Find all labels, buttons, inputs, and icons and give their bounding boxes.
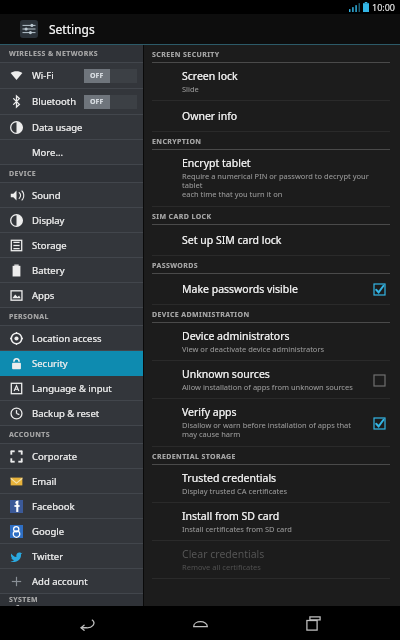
button[interactable]: Make passwords visible (370, 280, 388, 298)
button[interactable]: Google (0, 519, 143, 543)
staticText: Add account (32, 575, 88, 588)
button[interactable]: Verify apps (144, 399, 400, 446)
button[interactable]: Make passwords visible (144, 274, 400, 304)
button[interactable]: Toggle (84, 95, 137, 109)
staticText: SYSTEM (9, 595, 39, 605)
button[interactable]: Storage (0, 233, 143, 257)
button[interactable]: Verify apps (370, 414, 388, 432)
staticText: SIM CARD LOCK (152, 212, 212, 222)
staticText: Location access (32, 332, 102, 345)
staticText: Bluetooth (32, 95, 77, 108)
button[interactable]: Twitter (0, 544, 143, 568)
staticText: CREDENTIAL STORAGE (152, 452, 236, 462)
staticText: Security (32, 357, 68, 370)
button[interactable]: Unknown sources (370, 371, 388, 389)
staticText: Twitter (32, 550, 64, 563)
staticText: Encrypt tablet (182, 156, 251, 170)
button[interactable]: Security (0, 351, 143, 375)
staticText: Data usage (32, 121, 83, 134)
staticText: Corporate (32, 450, 78, 463)
staticText: WIRELESS & NETWORKS (9, 49, 99, 59)
staticText: Storage (32, 239, 67, 252)
button[interactable]: Language & input (0, 376, 143, 400)
button[interactable]: Recent apps (287, 608, 339, 638)
staticText: Wi-Fi (32, 69, 54, 82)
staticText: Clear credentials (182, 547, 265, 561)
button[interactable]: Bluetooth (0, 89, 143, 114)
button[interactable]: More… (0, 140, 143, 164)
button[interactable]: Screen lock (144, 63, 400, 100)
staticText: More… (32, 146, 63, 159)
button[interactable]: Back (61, 608, 113, 638)
button[interactable]: Facebook (0, 494, 143, 518)
button[interactable]: Battery (0, 258, 143, 282)
button[interactable]: Install from SD card (144, 503, 400, 540)
button[interactable]: Owner info (144, 101, 400, 131)
staticText: Apps (32, 289, 55, 302)
button[interactable]: Apps (0, 283, 143, 307)
staticText: Battery (32, 264, 65, 277)
staticText: OFF (90, 97, 104, 107)
staticText: Settings (49, 21, 95, 37)
button[interactable]: Toggle (84, 69, 137, 83)
staticText: Install from SD card (182, 509, 280, 523)
staticText: Backup & reset (32, 407, 100, 420)
staticText: Set up SIM card lock (182, 233, 282, 247)
staticText: SCREEN SECURITY (152, 50, 220, 60)
staticText: Language & input (32, 382, 112, 395)
staticText: Trusted credentials (182, 471, 277, 485)
staticText: Make passwords visible (182, 282, 298, 296)
staticText: Google (32, 525, 65, 538)
button[interactable]: Location access (0, 326, 143, 350)
staticText: PASSWORDS (152, 261, 198, 271)
staticText: Slide (182, 84, 199, 94)
staticText: View or deactivate device administrators (182, 344, 325, 354)
staticText: Email (32, 475, 57, 488)
button[interactable]: Email (0, 469, 143, 493)
staticText: ENCRYPTION (152, 137, 202, 147)
staticText: ACCOUNTS (9, 430, 51, 440)
staticText: Disallow or warn before installation of … (182, 420, 351, 440)
staticText: Install certificates from SD card (182, 524, 292, 534)
staticText: Display (32, 214, 65, 227)
button[interactable]: Encrypt tablet (144, 150, 400, 206)
button[interactable]: Trusted credentials (144, 465, 400, 502)
staticText: Owner info (182, 109, 238, 123)
button[interactable]: Add account (0, 569, 143, 593)
staticText: DEVICE (9, 169, 37, 179)
button[interactable]: Set up SIM card lock (144, 225, 400, 255)
staticText: Remove all certificates (182, 562, 261, 572)
staticText: Unknown sources (182, 367, 270, 381)
button[interactable]: Backup & reset (0, 401, 143, 425)
button[interactable]: Wi-Fi (0, 63, 143, 88)
staticText: PERSONAL (9, 312, 49, 322)
staticText: Facebook (32, 500, 75, 513)
staticText: Device administrators (182, 329, 290, 343)
button[interactable]: Corporate (0, 444, 143, 468)
staticText: 10:00 (372, 1, 396, 13)
button[interactable]: Home (174, 608, 226, 638)
button[interactable]: Clear credentials (144, 541, 400, 578)
button[interactable]: Unknown sources (144, 361, 400, 398)
staticText: Screen lock (182, 69, 238, 83)
staticText: Display trusted CA certificates (182, 486, 287, 496)
button[interactable]: Device administrators (144, 323, 400, 360)
staticText: Sound (32, 189, 61, 202)
staticText: DEVICE ADMINISTRATION (152, 310, 250, 320)
button[interactable]: Sound (0, 183, 143, 207)
staticText: Allow installation of apps from unknown … (182, 382, 353, 392)
button[interactable]: Data usage (0, 115, 143, 139)
staticText: Require a numerical PIN or password to d… (182, 171, 388, 200)
staticText: Verify apps (182, 405, 237, 419)
staticText: OFF (90, 71, 104, 81)
button[interactable]: Display (0, 208, 143, 232)
